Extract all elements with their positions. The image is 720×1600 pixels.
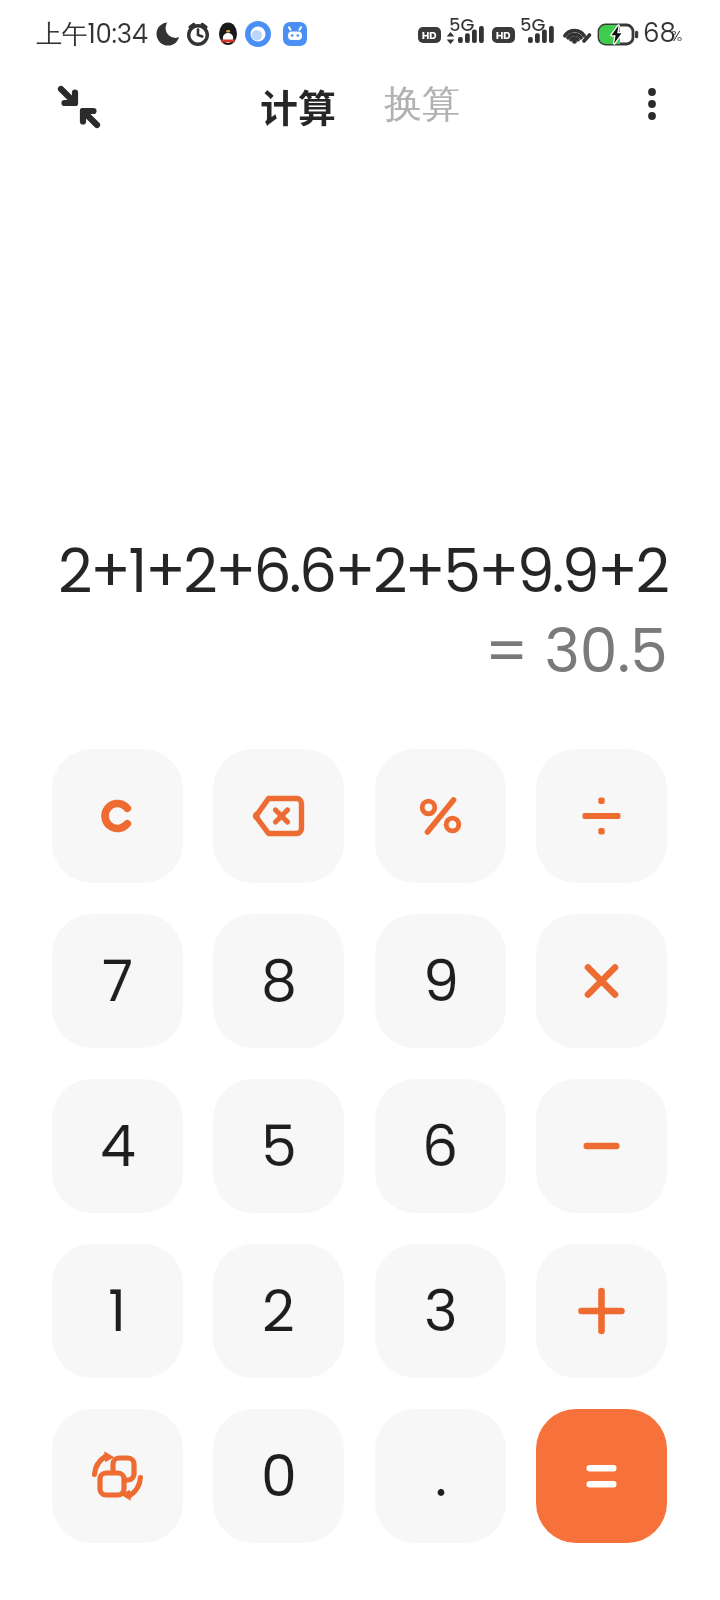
button[interactable]: 1 xyxy=(52,1244,183,1378)
staticText: 8 xyxy=(261,941,297,1021)
button[interactable]: 计算 xyxy=(260,78,337,130)
staticText: 4 xyxy=(100,1106,136,1186)
button[interactable]: 4 xyxy=(52,1079,183,1213)
button[interactable]: 9 xyxy=(375,914,506,1048)
button[interactable] xyxy=(375,749,506,883)
staticText: HD xyxy=(422,28,437,42)
button[interactable] xyxy=(213,749,344,883)
button[interactable] xyxy=(628,80,676,128)
staticText: 1 xyxy=(108,1271,127,1351)
staticText: 9 xyxy=(423,941,459,1021)
staticText: 上午10:34 xyxy=(36,16,148,52)
button[interactable] xyxy=(52,749,183,883)
button[interactable]: 换算 xyxy=(384,80,460,128)
staticText: HD xyxy=(496,28,511,42)
button[interactable]: 0 xyxy=(213,1409,344,1543)
staticText: 68 xyxy=(643,15,676,51)
button[interactable]: 7 xyxy=(52,914,183,1048)
staticText: 2+1+2+6.6+2+5+9.9+2 xyxy=(58,529,668,613)
staticText: 换算 xyxy=(384,80,460,128)
staticText: 计算 xyxy=(260,78,337,130)
button[interactable]: 2 xyxy=(213,1244,344,1378)
staticText: 5G xyxy=(520,12,546,37)
button[interactable]: 6 xyxy=(375,1079,506,1213)
button[interactable] xyxy=(536,1409,667,1543)
button[interactable]: 8 xyxy=(213,914,344,1048)
button[interactable] xyxy=(536,749,667,883)
staticText: 3 xyxy=(424,1271,458,1351)
button[interactable] xyxy=(36,76,100,140)
button[interactable]: . xyxy=(375,1409,506,1543)
staticText: 7 xyxy=(102,941,134,1021)
button[interactable] xyxy=(536,1079,667,1213)
staticText: . xyxy=(435,1436,447,1516)
staticText: 2 xyxy=(262,1271,295,1351)
button[interactable] xyxy=(536,914,667,1048)
staticText: 0 xyxy=(261,1436,297,1516)
button[interactable]: 3 xyxy=(375,1244,506,1378)
staticText: 5G xyxy=(449,12,475,37)
button[interactable] xyxy=(536,1244,667,1378)
staticText: 5 xyxy=(261,1106,297,1186)
button[interactable] xyxy=(52,1409,183,1543)
staticText: % xyxy=(671,25,683,46)
staticText: 6 xyxy=(422,1106,459,1186)
staticText: = 30.5 xyxy=(485,609,668,693)
button[interactable]: 5 xyxy=(213,1079,344,1213)
